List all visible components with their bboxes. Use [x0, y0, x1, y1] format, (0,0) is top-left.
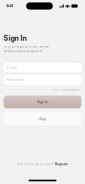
staticText: E-mail [7, 66, 17, 70]
button[interactable]: Skip [0, 108, 85, 125]
staticText: Register [55, 163, 68, 166]
staticText: To log into the application, enter the e… [3, 45, 49, 53]
button[interactable]: Sign In [0, 92, 85, 108]
button[interactable]: Forgot your password? [0, 85, 85, 92]
staticText: Sign In [3, 34, 26, 42]
staticText: Skip [39, 117, 46, 121]
staticText: Sign In [37, 100, 48, 104]
staticText: Don't have an account? [17, 163, 54, 166]
staticText: Forgot your password? [52, 88, 81, 91]
staticText: Password [7, 78, 23, 82]
button[interactable]: Don't have an account? [0, 161, 85, 168]
staticText: 9:41 [6, 4, 13, 8]
